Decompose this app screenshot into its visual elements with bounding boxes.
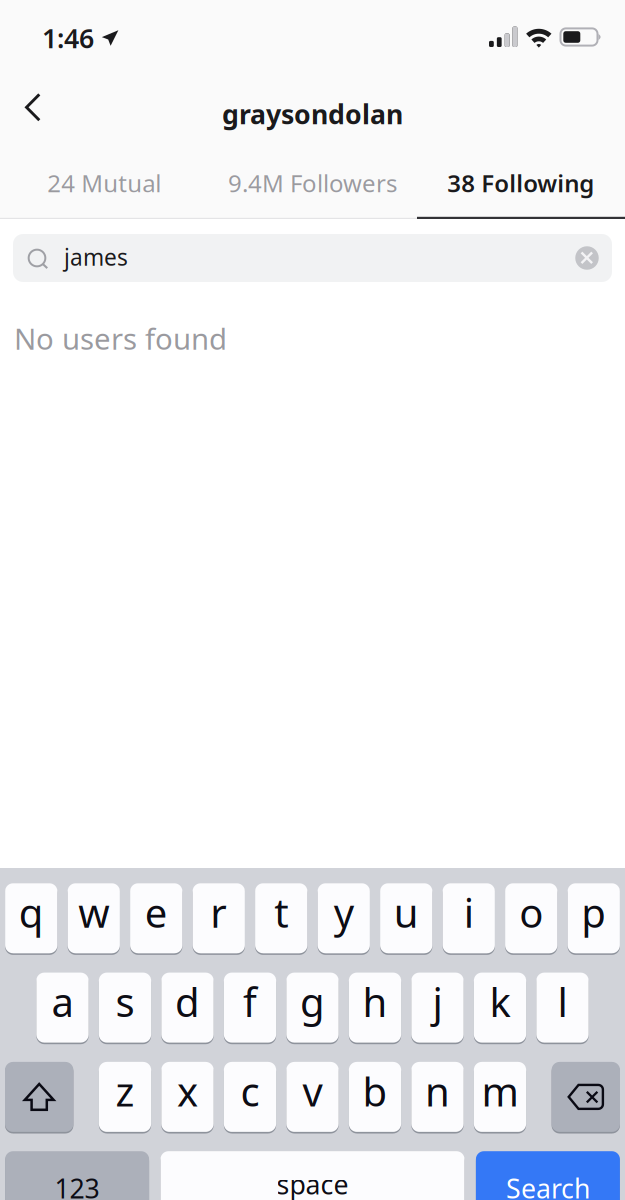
button[interactable]: q	[5, 882, 57, 954]
button[interactable]: z	[99, 1061, 151, 1133]
button[interactable]: c	[224, 1061, 276, 1133]
button[interactable]: Search	[476, 1150, 620, 1200]
button[interactable]: Clear search	[575, 246, 599, 270]
staticText: u	[394, 886, 419, 939]
staticText: a	[51, 975, 73, 1028]
button[interactable]: v	[286, 1061, 339, 1133]
button[interactable]: t	[255, 882, 307, 954]
button[interactable]: f	[224, 972, 276, 1043]
staticText: k	[489, 975, 510, 1028]
staticText: x	[177, 1064, 198, 1117]
staticText: james	[64, 242, 128, 272]
staticText: Search	[506, 1170, 590, 1200]
button[interactable]: h	[349, 972, 401, 1043]
staticText: h	[362, 975, 387, 1028]
staticText: b	[362, 1064, 387, 1117]
staticText: g	[300, 975, 325, 1028]
button[interactable]: u	[380, 882, 432, 954]
button[interactable]: Back	[8, 86, 58, 141]
button[interactable]: a	[36, 972, 89, 1043]
staticText: 123	[55, 1170, 100, 1200]
button[interactable]: e	[130, 882, 182, 954]
staticText: o	[519, 886, 543, 939]
staticText: d	[175, 975, 200, 1028]
button[interactable]: 24 Mutual	[0, 152, 208, 214]
staticText: 9.4M Followers	[228, 167, 397, 199]
staticText: r	[210, 886, 227, 939]
staticText: t	[274, 886, 288, 939]
button[interactable]: p	[568, 882, 620, 954]
button[interactable]: l	[536, 972, 589, 1043]
staticText: 1:46	[42, 20, 94, 56]
staticText: i	[464, 886, 474, 939]
button[interactable]: 123	[5, 1150, 149, 1200]
button[interactable]: j	[411, 972, 464, 1043]
staticText: No users found	[14, 319, 227, 358]
staticText: z	[115, 1064, 134, 1117]
button[interactable]: s	[99, 972, 151, 1043]
staticText: m	[481, 1064, 518, 1117]
button[interactable]: m	[474, 1061, 526, 1133]
staticText: e	[145, 886, 168, 939]
staticText: q	[19, 886, 44, 939]
staticText: p	[581, 886, 606, 939]
button[interactable]: w	[68, 882, 120, 954]
button[interactable]: i	[443, 882, 495, 954]
staticText: 38 Following	[447, 167, 594, 199]
staticText: f	[243, 975, 257, 1028]
button[interactable]: g	[286, 972, 339, 1043]
button[interactable]: b	[349, 1061, 401, 1133]
button[interactable]: d	[161, 972, 214, 1043]
button[interactable]: x	[161, 1061, 214, 1133]
button[interactable]: space	[160, 1150, 464, 1200]
staticText: space	[276, 1166, 348, 1200]
staticText: l	[557, 975, 567, 1028]
staticText: n	[425, 1064, 450, 1117]
button[interactable]: 9.4M Followers	[208, 152, 417, 214]
staticText: c	[240, 1064, 259, 1117]
staticText: j	[432, 975, 442, 1028]
button[interactable]: o	[505, 882, 557, 954]
button[interactable]: y	[318, 882, 370, 954]
button[interactable]: k	[474, 972, 526, 1043]
button[interactable]: Shift	[5, 1061, 73, 1133]
staticText: w	[78, 886, 109, 939]
staticText: v	[302, 1064, 322, 1117]
staticText: 24 Mutual	[47, 167, 161, 199]
button[interactable]: r	[193, 882, 245, 954]
staticText: y	[334, 886, 354, 939]
button[interactable]: Delete	[552, 1061, 620, 1133]
staticText: s	[115, 975, 134, 1028]
staticText: graysondolan	[222, 96, 403, 132]
button[interactable]: 38 Following	[417, 152, 625, 214]
button[interactable]: n	[411, 1061, 464, 1133]
